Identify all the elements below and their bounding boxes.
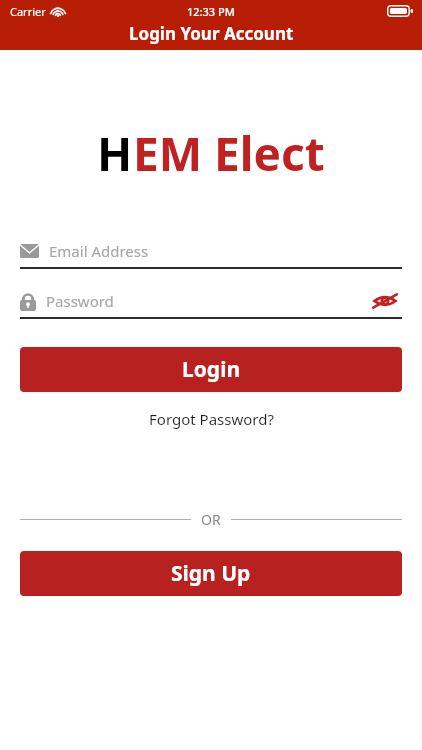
staticText: Password [46, 291, 114, 311]
staticText: Sign Up [171, 559, 251, 588]
button[interactable]: Sign Up [20, 551, 402, 596]
staticText: Login Your Account [129, 22, 294, 45]
staticText: H [97, 122, 133, 185]
staticText: Carrier [10, 4, 46, 19]
button[interactable]: Show password [368, 288, 402, 314]
staticText: Login [182, 355, 241, 384]
staticText: 12:33 PM [187, 4, 235, 19]
button[interactable]: Forgot Password? [141, 406, 282, 432]
staticText: EM Elect [133, 122, 325, 185]
button[interactable]: Password [20, 287, 368, 315]
staticText: Forgot Password? [149, 409, 274, 429]
button[interactable]: Login [20, 347, 402, 392]
button[interactable]: Email Address [20, 237, 402, 265]
staticText: Email Address [49, 241, 149, 261]
staticText: OR [201, 510, 221, 529]
